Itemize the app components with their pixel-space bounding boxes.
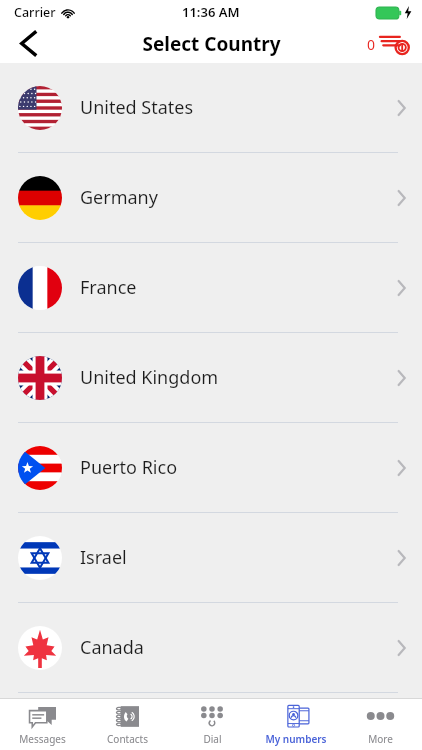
button[interactable]: Canada bbox=[0, 603, 422, 692]
button[interactable]: Back bbox=[6, 24, 50, 63]
staticText: Select Country bbox=[142, 31, 281, 57]
button[interactable]: More bbox=[338, 699, 422, 750]
staticText: Canada bbox=[80, 635, 144, 660]
button[interactable]: Messages bbox=[0, 699, 85, 750]
button[interactable]: My numbers bbox=[254, 699, 338, 750]
button[interactable]: United Kingdom bbox=[0, 333, 422, 422]
staticText: France bbox=[80, 275, 137, 300]
button[interactable]: Germany bbox=[0, 153, 422, 242]
staticText: 0 bbox=[367, 35, 376, 54]
button[interactable]: Credits bbox=[365, 29, 412, 59]
staticText: 11:36 AM bbox=[182, 3, 240, 21]
staticText: Puerto Rico bbox=[80, 455, 178, 480]
staticText: Contacts bbox=[107, 732, 148, 746]
button[interactable]: Contacts bbox=[85, 699, 170, 750]
staticText: United Kingdom bbox=[80, 365, 219, 390]
staticText: More bbox=[368, 732, 393, 746]
staticText: My numbers bbox=[265, 732, 327, 746]
staticText: Carrier bbox=[14, 4, 56, 21]
button[interactable]: United States bbox=[0, 63, 422, 152]
button[interactable]: Puerto Rico bbox=[0, 423, 422, 512]
staticText: Messages bbox=[19, 732, 66, 746]
button[interactable]: Israel bbox=[0, 513, 422, 602]
staticText: Dial bbox=[203, 732, 222, 746]
button[interactable]: France bbox=[0, 243, 422, 332]
staticText: Germany bbox=[80, 185, 158, 210]
staticText: United States bbox=[80, 95, 194, 120]
button[interactable]: Dial bbox=[170, 699, 254, 750]
staticText: Israel bbox=[80, 545, 127, 570]
